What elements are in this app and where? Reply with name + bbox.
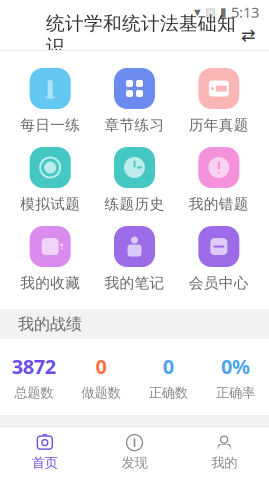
button[interactable]: 我的 — [179, 434, 269, 471]
button[interactable]: 章节练习 — [92, 68, 177, 134]
staticText: 0 — [163, 353, 174, 380]
staticText: 我的错题 — [189, 195, 249, 213]
staticText: 0% — [221, 353, 250, 380]
staticText: 历年真题 — [189, 116, 249, 134]
button[interactable]: 切换科目 — [241, 25, 256, 45]
staticText: 模拟试题 — [20, 195, 80, 213]
staticText: 统计学和统计法基础知识 — [46, 12, 236, 58]
staticText: ⇄ — [241, 25, 256, 45]
staticText: 我的笔记 — [104, 274, 164, 292]
staticText: 首页 — [32, 455, 58, 471]
staticText: 练题历史 — [104, 195, 164, 213]
button[interactable]: 我的错题 — [177, 147, 261, 213]
staticText: 我的收藏 — [20, 274, 80, 292]
button[interactable]: 练题历史 — [92, 147, 177, 213]
staticText: 章节练习 — [104, 116, 164, 134]
staticText: ▨ — [205, 5, 216, 19]
button[interactable]: 会员中心 — [177, 226, 261, 292]
staticText: 我的 — [211, 455, 237, 471]
staticText: 会员中心 — [189, 274, 249, 292]
button[interactable]: 每日一练 — [8, 68, 92, 134]
staticText: ▮ — [220, 5, 227, 19]
staticText: 0 — [95, 353, 106, 380]
staticText: 我的战绩 — [18, 314, 82, 334]
button[interactable]: 我的收藏 — [8, 226, 92, 292]
button[interactable]: 我的笔记 — [92, 226, 177, 292]
staticText: 每日一练 — [20, 116, 80, 134]
staticText: 3872 — [12, 353, 56, 380]
staticText: ▾ — [194, 4, 201, 19]
button[interactable]: 发现 — [90, 434, 179, 471]
staticText: 发现 — [121, 455, 147, 471]
staticText: 总题数 — [14, 385, 53, 401]
staticText: 5:13 — [231, 2, 259, 22]
button[interactable]: 历年真题 — [177, 68, 261, 134]
button[interactable]: 模拟试题 — [8, 147, 92, 213]
staticText: 正确率 — [216, 385, 255, 401]
staticText: 正确数 — [149, 385, 188, 401]
staticText: 做题数 — [81, 385, 120, 401]
button[interactable]: 首页 — [0, 434, 90, 471]
